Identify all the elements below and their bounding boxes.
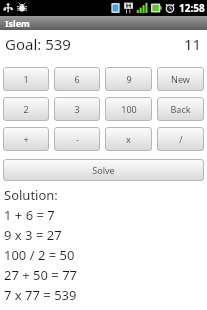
button[interactable]: 100: [105, 97, 152, 121]
staticText: 9 x 3 = 27: [4, 226, 62, 244]
staticText: 100: [121, 103, 137, 115]
button[interactable]: 3: [54, 97, 100, 121]
button[interactable]: /: [157, 127, 204, 151]
staticText: 6: [74, 73, 80, 85]
staticText: /: [179, 133, 183, 145]
staticText: 1: [23, 73, 29, 85]
staticText: Goal: 539: [5, 34, 71, 54]
button[interactable]: x: [105, 127, 152, 151]
staticText: +: [23, 133, 29, 145]
button[interactable]: Solve: [3, 159, 204, 181]
staticText: 2: [23, 103, 29, 115]
staticText: 3: [74, 103, 80, 115]
staticText: -: [76, 133, 79, 145]
staticText: New: [171, 73, 190, 85]
staticText: 7 x 77 = 539: [4, 286, 77, 304]
button[interactable]: 6: [54, 67, 100, 91]
staticText: 100 / 2 = 50: [4, 246, 75, 264]
staticText: 27 + 50 = 77: [4, 266, 78, 284]
button[interactable]: 9: [105, 67, 152, 91]
button[interactable]: Back: [157, 97, 204, 121]
button[interactable]: +: [3, 127, 49, 151]
button[interactable]: 1: [3, 67, 49, 91]
staticText: 11: [184, 34, 202, 54]
staticText: 9: [126, 73, 132, 85]
staticText: x: [126, 133, 131, 145]
button[interactable]: -: [54, 127, 100, 151]
button[interactable]: New: [157, 67, 204, 91]
staticText: Back: [170, 103, 191, 115]
button[interactable]: 2: [3, 97, 49, 121]
staticText: Solve: [92, 164, 115, 176]
staticText: Islem: [5, 17, 30, 29]
staticText: 1 + 6 = 7: [4, 206, 55, 224]
staticText: 12:58: [179, 1, 205, 15]
staticText: Solution:: [4, 186, 58, 204]
